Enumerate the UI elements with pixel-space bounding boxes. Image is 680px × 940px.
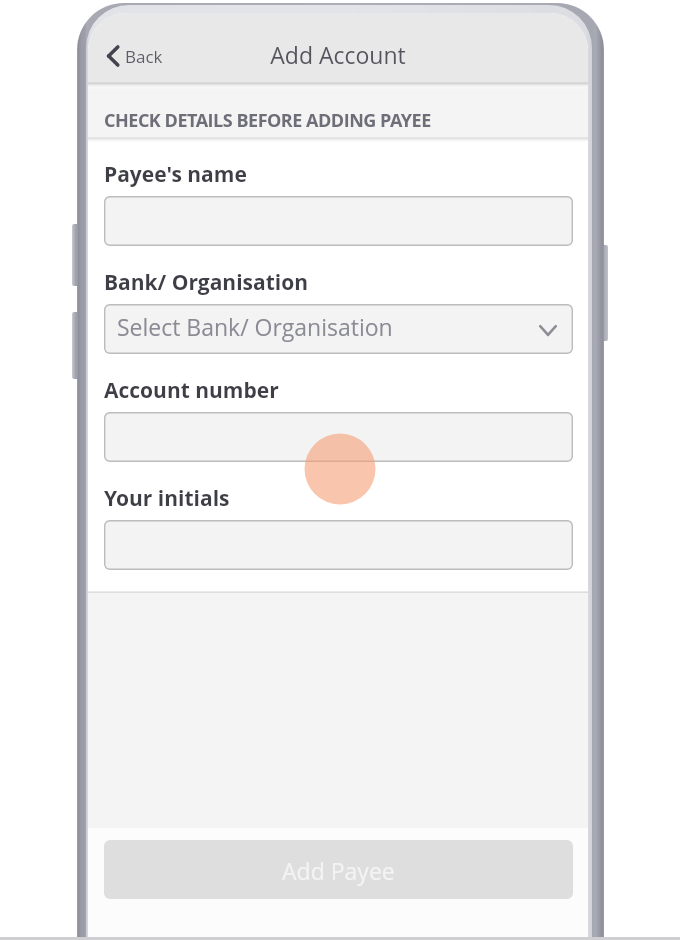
staticText: Payee's name [104, 160, 247, 189]
staticText: Back [125, 45, 163, 68]
staticText: Add Payee [282, 855, 395, 886]
button[interactable] [104, 520, 573, 570]
button[interactable] [104, 196, 573, 246]
staticText: Select Bank/ Organisation [117, 311, 393, 342]
staticText: Add Account [88, 39, 588, 70]
button[interactable] [104, 412, 573, 462]
staticText: Account number [104, 376, 279, 405]
staticText: CHECK DETAILS BEFORE ADDING PAYEE [104, 108, 431, 133]
button[interactable]: Select Bank/ Organisation [104, 304, 573, 354]
button[interactable]: Back [104, 43, 166, 69]
staticText: Bank/ Organisation [104, 268, 309, 297]
staticText: Your initials [104, 484, 230, 513]
button[interactable]: Add Payee [104, 840, 573, 899]
